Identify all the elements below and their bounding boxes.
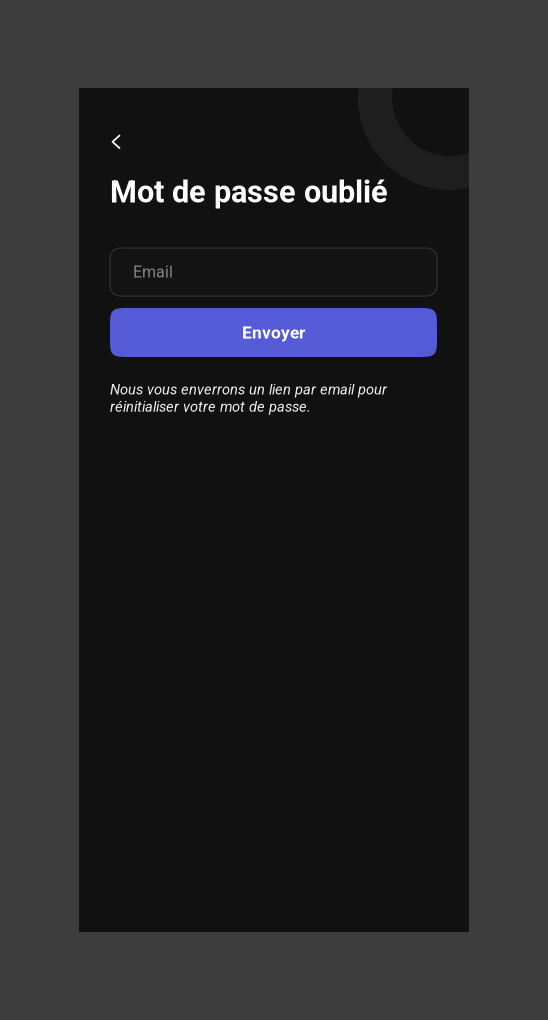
staticText: Envoyer bbox=[242, 322, 305, 343]
staticText: Email bbox=[133, 263, 173, 281]
button[interactable]: Back bbox=[100, 123, 131, 160]
button[interactable]: Envoyer bbox=[110, 308, 437, 357]
staticText: Mot de passe oublié bbox=[110, 174, 388, 210]
staticText: Nous vous enverrons un lien par email po… bbox=[110, 381, 387, 415]
